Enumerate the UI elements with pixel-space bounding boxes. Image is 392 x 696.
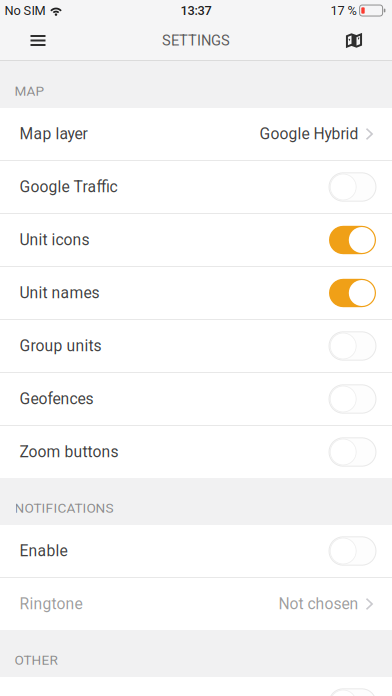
staticText: SETTINGS bbox=[162, 32, 230, 49]
button[interactable]: Zoom buttons bbox=[0, 426, 392, 478]
staticText: Google Traffic bbox=[19, 178, 117, 196]
staticText: Not chosen bbox=[279, 595, 359, 613]
staticText: Group units bbox=[19, 337, 101, 355]
button[interactable]: Group units bbox=[0, 320, 392, 372]
staticText: 17 % bbox=[330, 3, 356, 18]
button[interactable]: Map bbox=[331, 21, 377, 60]
staticText: Enable bbox=[19, 542, 67, 560]
button[interactable]: Unit icons bbox=[0, 214, 392, 266]
button[interactable]: Enable bbox=[0, 525, 392, 577]
staticText: Google Hybrid bbox=[260, 125, 359, 143]
staticText: No SIM bbox=[4, 3, 45, 18]
staticText: Map layer bbox=[19, 125, 87, 143]
staticText: Geofences bbox=[19, 390, 93, 408]
button[interactable]: Geofences bbox=[0, 373, 392, 425]
button[interactable]: Google Traffic bbox=[0, 161, 392, 213]
staticText: MAP bbox=[14, 83, 44, 99]
staticText: OTHER bbox=[14, 652, 57, 668]
staticText: Zoom buttons bbox=[19, 443, 118, 461]
button[interactable]: Menu bbox=[15, 21, 61, 60]
staticText: NOTIFICATIONS bbox=[14, 500, 113, 516]
staticText: Ringtone bbox=[19, 595, 82, 613]
staticText: Unit icons bbox=[19, 231, 89, 249]
staticText: 13:37 bbox=[180, 3, 211, 18]
staticText: Unit names bbox=[19, 284, 99, 302]
button[interactable]: Map layer bbox=[0, 108, 392, 160]
button[interactable]: Ringtone bbox=[0, 578, 392, 630]
button[interactable]: Unit names bbox=[0, 267, 392, 319]
